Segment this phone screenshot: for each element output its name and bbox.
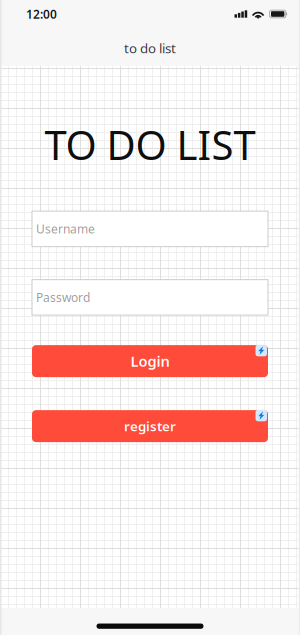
button[interactable]: Password [32, 280, 268, 315]
staticText: 12:00 [26, 6, 57, 22]
staticText: to do list [124, 39, 176, 57]
staticText: Username [36, 221, 95, 237]
button[interactable]: Username [32, 211, 268, 247]
staticText: register [124, 417, 176, 435]
button[interactable]: Login [32, 345, 268, 377]
staticText: TO DO LIST [44, 118, 255, 171]
staticText: Password [36, 289, 90, 305]
button[interactable]: register [32, 410, 268, 442]
staticText: Login [130, 351, 169, 371]
